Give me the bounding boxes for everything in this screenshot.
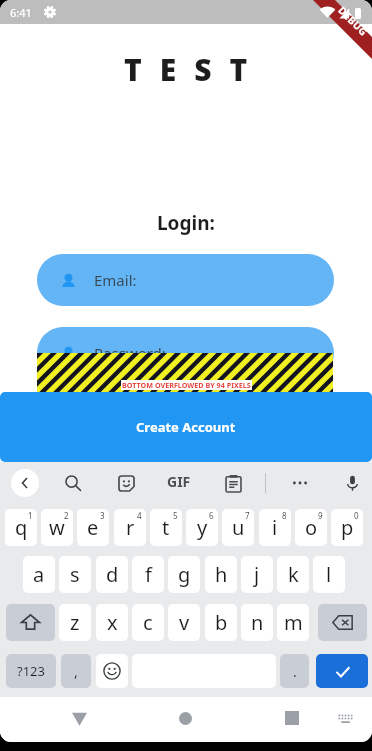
staticText: 0 — [354, 510, 359, 521]
staticText: g — [178, 561, 191, 588]
button[interactable]: n — [241, 604, 273, 641]
button[interactable]: . — [280, 654, 309, 688]
staticText: y — [197, 514, 208, 541]
staticText: Login: — [157, 210, 215, 236]
button[interactable]: u — [222, 509, 254, 546]
button[interactable]: r — [114, 509, 146, 546]
button[interactable]: l — [313, 556, 345, 593]
staticText: T E S T — [124, 49, 253, 90]
button[interactable]: Create Account — [0, 392, 372, 462]
button[interactable]: o — [295, 509, 327, 546]
button[interactable]: p — [331, 509, 363, 546]
staticText: 4 — [137, 510, 142, 521]
staticText: Email: — [94, 270, 137, 290]
button[interactable]: j — [241, 556, 273, 593]
button[interactable]: Email: — [37, 254, 334, 306]
button[interactable]: Emoji — [96, 654, 128, 688]
button[interactable]: m — [277, 604, 309, 641]
staticText: z — [70, 609, 80, 636]
staticText: c — [143, 609, 153, 636]
staticText: l — [326, 561, 332, 588]
button[interactable]: Back — [11, 469, 39, 497]
staticText: 3 — [100, 510, 105, 521]
staticText: , — [74, 662, 78, 681]
staticText: v — [179, 609, 190, 636]
button[interactable]: Keyboard — [330, 703, 360, 733]
button[interactable]: x — [96, 604, 128, 641]
button[interactable]: a — [23, 556, 55, 593]
staticText: t — [162, 514, 170, 541]
button[interactable]: d — [96, 556, 128, 593]
staticText: 9 — [318, 510, 323, 521]
button[interactable]: t — [150, 509, 182, 546]
button[interactable]: Enter — [316, 654, 368, 688]
button[interactable]: k — [277, 556, 309, 593]
staticText: 1 — [28, 510, 33, 521]
staticText: 8 — [282, 510, 287, 521]
button[interactable]: Home — [170, 703, 200, 733]
button[interactable]: c — [132, 604, 164, 641]
staticText: p — [341, 514, 354, 541]
staticText: . — [293, 662, 297, 681]
staticText: u — [232, 514, 245, 541]
button[interactable]: , — [61, 654, 91, 688]
staticText: s — [70, 561, 80, 588]
button[interactable]: i — [259, 509, 291, 546]
staticText: e — [87, 514, 99, 541]
staticText: Create Account — [136, 418, 236, 436]
button[interactable]: f — [132, 556, 164, 593]
staticText: m — [284, 609, 303, 636]
button[interactable]: Clipboard — [221, 471, 245, 495]
staticText: r — [126, 514, 135, 541]
staticText: h — [215, 561, 228, 588]
staticText: k — [288, 561, 299, 588]
button[interactable]: GIF — [167, 472, 191, 491]
staticText: x — [107, 609, 118, 636]
staticText: BOTTOM OVERFLOWED BY 94 PIXELS — [122, 380, 251, 390]
staticText: i — [272, 514, 278, 541]
button[interactable]: Search — [61, 471, 85, 495]
staticText: 6 — [209, 510, 214, 521]
staticText: DEBUG — [335, 3, 371, 39]
staticText: f — [145, 561, 152, 588]
button[interactable]: Shift — [6, 604, 55, 641]
staticText: w — [49, 514, 65, 541]
button[interactable]: y — [186, 509, 218, 546]
staticText: 7 — [245, 510, 250, 521]
button[interactable]: Stickers — [114, 471, 138, 495]
button[interactable]: Back — [64, 703, 94, 733]
button[interactable]: w — [41, 509, 73, 546]
button[interactable]: s — [59, 556, 91, 593]
button[interactable]: b — [205, 604, 237, 641]
staticText: d — [106, 561, 119, 588]
button[interactable]: Password: — [37, 327, 334, 379]
button[interactable]: q — [5, 509, 37, 546]
staticText: 6:41 — [10, 5, 32, 20]
staticText: b — [215, 609, 228, 636]
button[interactable]: e — [77, 509, 109, 546]
button[interactable]: h — [205, 556, 237, 593]
button[interactable]: z — [59, 604, 91, 641]
staticText: q — [15, 514, 28, 541]
button[interactable]: More options — [288, 471, 312, 495]
button[interactable]: Backspace — [318, 604, 367, 641]
button[interactable]: Voice input — [340, 471, 364, 495]
button[interactable]: v — [168, 604, 200, 641]
staticText: o — [305, 514, 318, 541]
staticText: Password: — [94, 343, 166, 363]
staticText: 2 — [64, 510, 69, 521]
button[interactable]: g — [168, 556, 200, 593]
staticText: ?123 — [17, 662, 45, 680]
button[interactable]: ?123 — [6, 654, 56, 688]
button[interactable]: Recents — [277, 703, 307, 733]
staticText: j — [254, 561, 260, 588]
staticText: 5 — [173, 510, 178, 521]
staticText: n — [251, 609, 264, 636]
staticText: a — [33, 561, 45, 588]
